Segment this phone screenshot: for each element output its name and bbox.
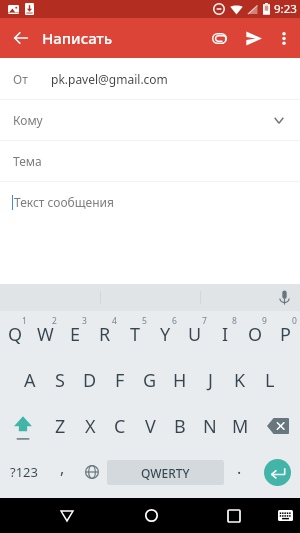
staticText: Y: [160, 322, 171, 347]
staticText: F: [115, 368, 125, 393]
button[interactable]: Тема: [0, 141, 300, 181]
staticText: 8: [232, 315, 237, 327]
button[interactable]: A: [15, 357, 45, 403]
staticText: A: [24, 368, 36, 393]
button[interactable]: Backspace: [255, 403, 300, 449]
button[interactable]: N: [195, 403, 225, 449]
button[interactable]: D: [75, 357, 105, 403]
staticText: Q: [8, 322, 23, 347]
staticText: K: [234, 368, 246, 393]
button[interactable]: Change keyboard language: [76, 449, 107, 495]
button[interactable]: Recent apps: [211, 498, 257, 533]
staticText: S: [55, 368, 65, 393]
staticText: T: [130, 322, 141, 347]
staticText: I: [222, 322, 229, 347]
button[interactable]: Home: [128, 498, 174, 533]
staticText: Кому: [13, 112, 43, 128]
staticText: W: [37, 322, 54, 347]
staticText: E: [70, 322, 81, 347]
button[interactable]: X: [75, 403, 105, 449]
button[interactable]: K: [225, 357, 255, 403]
staticText: X: [85, 414, 96, 439]
button[interactable]: Back: [0, 18, 41, 58]
button[interactable]: Shift: [0, 403, 45, 449]
staticText: ?123: [10, 463, 38, 481]
button[interactable]: Z: [45, 403, 75, 449]
staticText: 0: [292, 315, 297, 327]
button[interactable]: QWERTY: [107, 460, 224, 485]
button[interactable]: W: [30, 311, 60, 357]
staticText: 3: [82, 315, 87, 327]
button[interactable]: Enter: [255, 449, 300, 495]
staticText: QWERTY: [141, 465, 190, 481]
staticText: Написать: [42, 28, 113, 48]
button[interactable]: Q: [0, 311, 30, 357]
staticText: G: [143, 368, 157, 393]
staticText: 9:23: [274, 1, 297, 17]
button[interactable]: ?123: [0, 449, 48, 495]
button[interactable]: Текст сообщения: [0, 182, 300, 222]
button[interactable]: Voice input: [268, 284, 300, 311]
button[interactable]: От: [0, 58, 300, 99]
staticText: Текст сообщения: [14, 194, 114, 210]
button[interactable]: H: [165, 357, 195, 403]
button[interactable]: Back: [44, 498, 89, 533]
button[interactable]: .: [224, 449, 255, 495]
staticText: 5: [142, 315, 147, 327]
staticText: Тема: [13, 153, 42, 169]
button[interactable]: T: [120, 311, 150, 357]
button[interactable]: More options: [270, 18, 298, 58]
button[interactable]: J: [195, 357, 225, 403]
staticText: D: [83, 368, 97, 393]
staticText: Z: [55, 414, 66, 439]
button[interactable]: Attach file: [196, 18, 230, 58]
button[interactable]: E: [60, 311, 90, 357]
staticText: J: [208, 368, 213, 393]
button[interactable]: M: [225, 403, 255, 449]
button[interactable]: Кому: [0, 100, 300, 140]
button[interactable]: S: [45, 357, 75, 403]
button[interactable]: Send: [230, 18, 270, 58]
staticText: L: [265, 368, 275, 393]
button[interactable]: V: [135, 403, 165, 449]
staticText: pk.pavel@gmail.com: [51, 71, 168, 87]
staticText: B: [174, 414, 186, 439]
staticText: 2: [52, 315, 57, 327]
button[interactable]: U: [180, 311, 210, 357]
button[interactable]: Switch keyboard: [268, 498, 300, 533]
staticText: V: [145, 414, 156, 439]
staticText: ,: [60, 457, 65, 479]
button[interactable]: I: [210, 311, 240, 357]
staticText: 7: [202, 315, 207, 327]
button[interactable]: P: [270, 311, 300, 357]
button[interactable]: R: [90, 311, 120, 357]
button[interactable]: C: [105, 403, 135, 449]
staticText: .: [237, 457, 242, 479]
staticText: H: [173, 368, 187, 393]
staticText: 9: [262, 315, 267, 327]
staticText: N: [203, 414, 217, 439]
button[interactable]: F: [105, 357, 135, 403]
staticText: U: [188, 322, 202, 347]
staticText: 4: [112, 315, 117, 327]
button[interactable]: G: [135, 357, 165, 403]
staticText: 1: [22, 315, 27, 327]
button[interactable]: Y: [150, 311, 180, 357]
staticText: R: [99, 322, 111, 347]
staticText: C: [114, 414, 126, 439]
staticText: От: [13, 71, 28, 87]
button[interactable]: L: [255, 357, 285, 403]
button[interactable]: ,: [48, 449, 76, 495]
button[interactable]: O: [240, 311, 270, 357]
button[interactable]: B: [165, 403, 195, 449]
staticText: O: [248, 322, 263, 347]
staticText: P: [280, 322, 291, 347]
staticText: 6: [172, 315, 177, 327]
staticText: M: [232, 414, 249, 439]
